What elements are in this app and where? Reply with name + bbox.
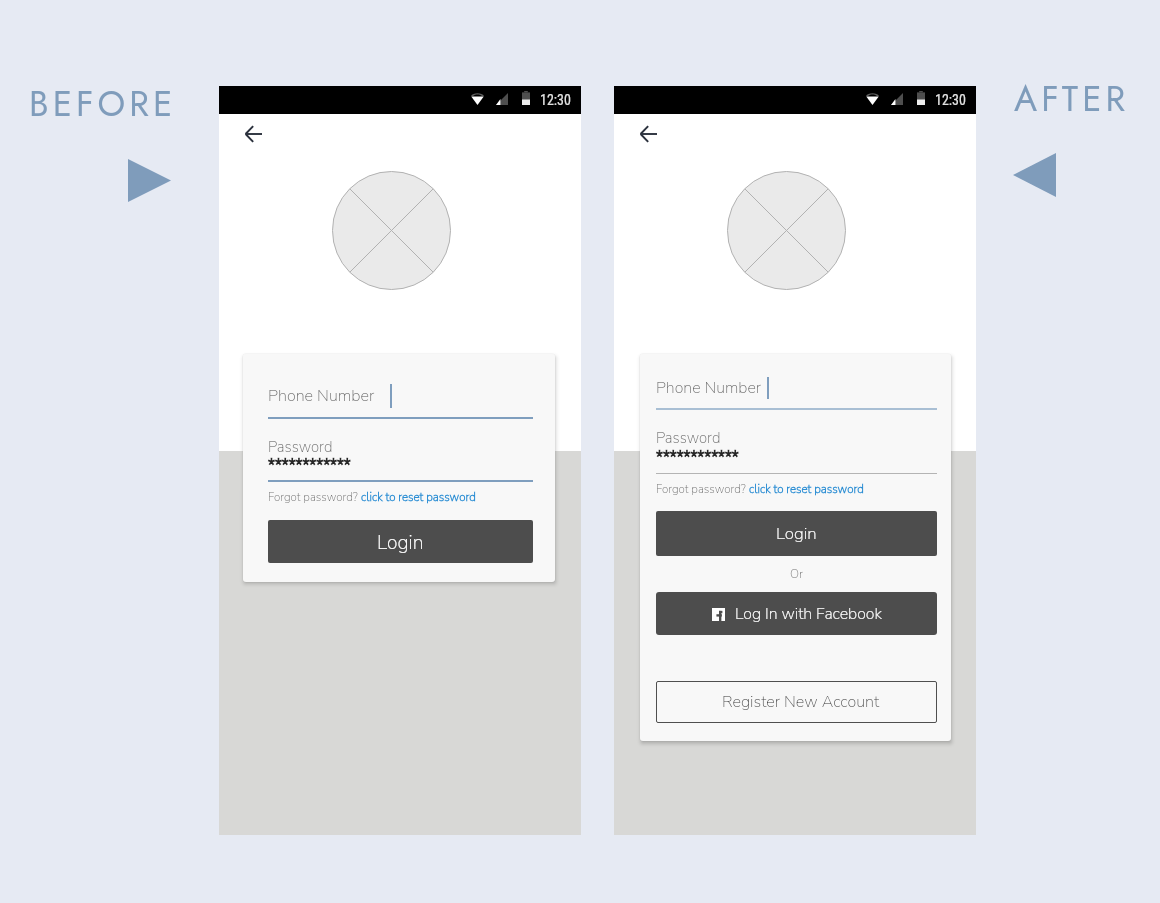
button[interactable]: Log In with Facebook [656,592,937,635]
button[interactable]: Back [233,114,273,154]
staticText: Login [377,529,424,555]
staticText: ************ [656,447,739,466]
staticText: Forgot password? [268,489,361,505]
button[interactable]: Forgot password? [656,481,864,497]
staticText: Forgot password? [656,481,749,497]
staticText: AFTER [1014,74,1130,125]
button[interactable]: Login [268,520,533,563]
staticText: Login [776,522,817,545]
button[interactable]: Back [628,114,668,154]
button[interactable]: Forgot password? [268,489,476,505]
button[interactable]: Register New Account [656,681,937,723]
staticText: click to reset password [361,489,476,505]
staticText: Password [656,428,721,448]
staticText: 12:30 [935,92,966,108]
staticText: Or [656,566,937,582]
button[interactable]: Login [656,511,937,556]
staticText: click to reset password [749,481,864,497]
staticText: Register New Account [722,691,880,713]
button[interactable]: Previous [1013,153,1056,197]
staticText: Phone Number [656,377,761,399]
staticText: ************ [268,455,351,474]
staticText: Password [268,437,333,457]
button[interactable]: Next [128,159,171,202]
staticText: Phone Number [268,385,375,407]
staticText: Log In with Facebook [735,603,882,625]
staticText: BEFORE [29,79,177,130]
staticText: 12:30 [540,92,571,108]
